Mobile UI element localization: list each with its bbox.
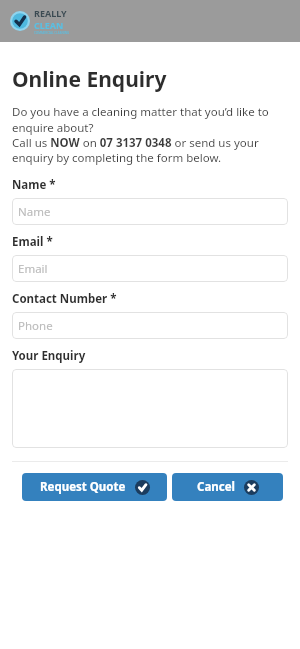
staticText: COMMERCIAL CLEANING — [34, 31, 70, 35]
button[interactable]: Name — [12, 198, 288, 225]
button[interactable]: Request Quote — [22, 473, 167, 501]
staticText: Email * — [12, 234, 53, 250]
button[interactable]: Your Enquiry — [12, 369, 288, 448]
staticText: CLEAN — [34, 19, 64, 31]
staticText: Contact Number * — [12, 291, 117, 307]
staticText: Cancel — [197, 479, 235, 495]
staticText: Name — [18, 204, 51, 220]
staticText: Online Enquiry — [12, 65, 167, 94]
button[interactable]: Email — [12, 255, 288, 282]
staticText: Your Enquiry — [12, 348, 86, 364]
staticText: Name * — [12, 177, 56, 193]
button[interactable]: Phone — [12, 312, 288, 339]
staticText: REALLY — [34, 7, 67, 19]
staticText: Request Quote — [40, 479, 126, 495]
staticText: Do you have a cleaning matter that you’d… — [12, 104, 288, 165]
button[interactable]: Really Clean home — [10, 7, 70, 35]
button[interactable]: Cancel — [172, 473, 283, 501]
staticText: Email — [18, 261, 48, 277]
staticText: Phone — [18, 318, 53, 334]
